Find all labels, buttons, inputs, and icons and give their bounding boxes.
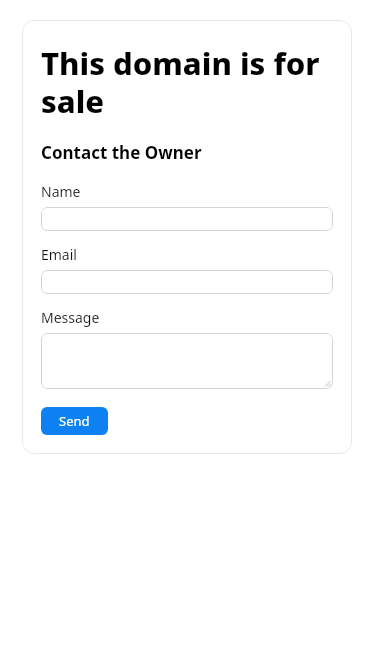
- staticText: Email: [41, 245, 77, 264]
- button[interactable]: Message input field: [41, 333, 333, 389]
- staticText: Message: [41, 308, 100, 327]
- button[interactable]: Send: [41, 407, 108, 435]
- button[interactable]: Email input field: [41, 270, 333, 294]
- staticText: Contact the Owner: [41, 141, 202, 164]
- button[interactable]: Name input field: [41, 207, 333, 231]
- staticText: Send: [59, 412, 90, 430]
- staticText: Name: [41, 182, 81, 201]
- staticText: This domain is for sale: [41, 42, 333, 122]
